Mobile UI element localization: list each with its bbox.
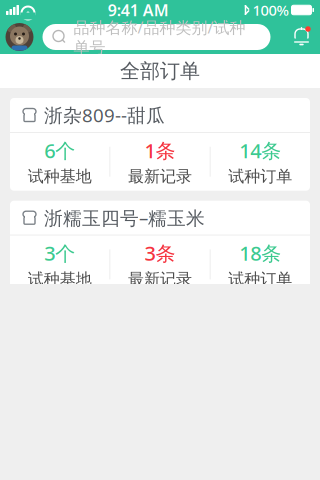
- button[interactable]: Profile: [5, 23, 33, 51]
- button[interactable]: 品种名称/品种类别/试种单号: [42, 24, 270, 50]
- button[interactable]: 浙杂809--甜瓜: [10, 98, 310, 191]
- staticText: 3个: [44, 240, 75, 266]
- staticText: 品种名称/品种类别/试种单号: [73, 16, 245, 57]
- staticText: 试种基地: [28, 269, 92, 289]
- staticText: 最新记录: [128, 269, 192, 289]
- staticText: 9:41 AM: [108, 0, 169, 21]
- staticText: 浙杂809--甜瓜: [44, 103, 165, 127]
- button[interactable]: 浙糯玉四号–糯玉米: [10, 201, 310, 293]
- staticText: 试种订单: [228, 269, 292, 289]
- staticText: 3条: [144, 240, 175, 266]
- staticText: 1条: [144, 137, 175, 164]
- button[interactable]: Notifications: [288, 24, 314, 50]
- staticText: 100%: [252, 0, 288, 20]
- staticText: 最新记录: [128, 167, 192, 186]
- staticText: 14条: [239, 137, 281, 164]
- staticText: 18条: [239, 240, 281, 266]
- staticText: 6个: [44, 137, 75, 164]
- staticText: 试种基地: [28, 167, 92, 186]
- staticText: 全部订单: [120, 59, 200, 83]
- staticText: 试种订单: [228, 167, 292, 186]
- staticText: 浙糯玉四号–糯玉米: [44, 205, 205, 230]
